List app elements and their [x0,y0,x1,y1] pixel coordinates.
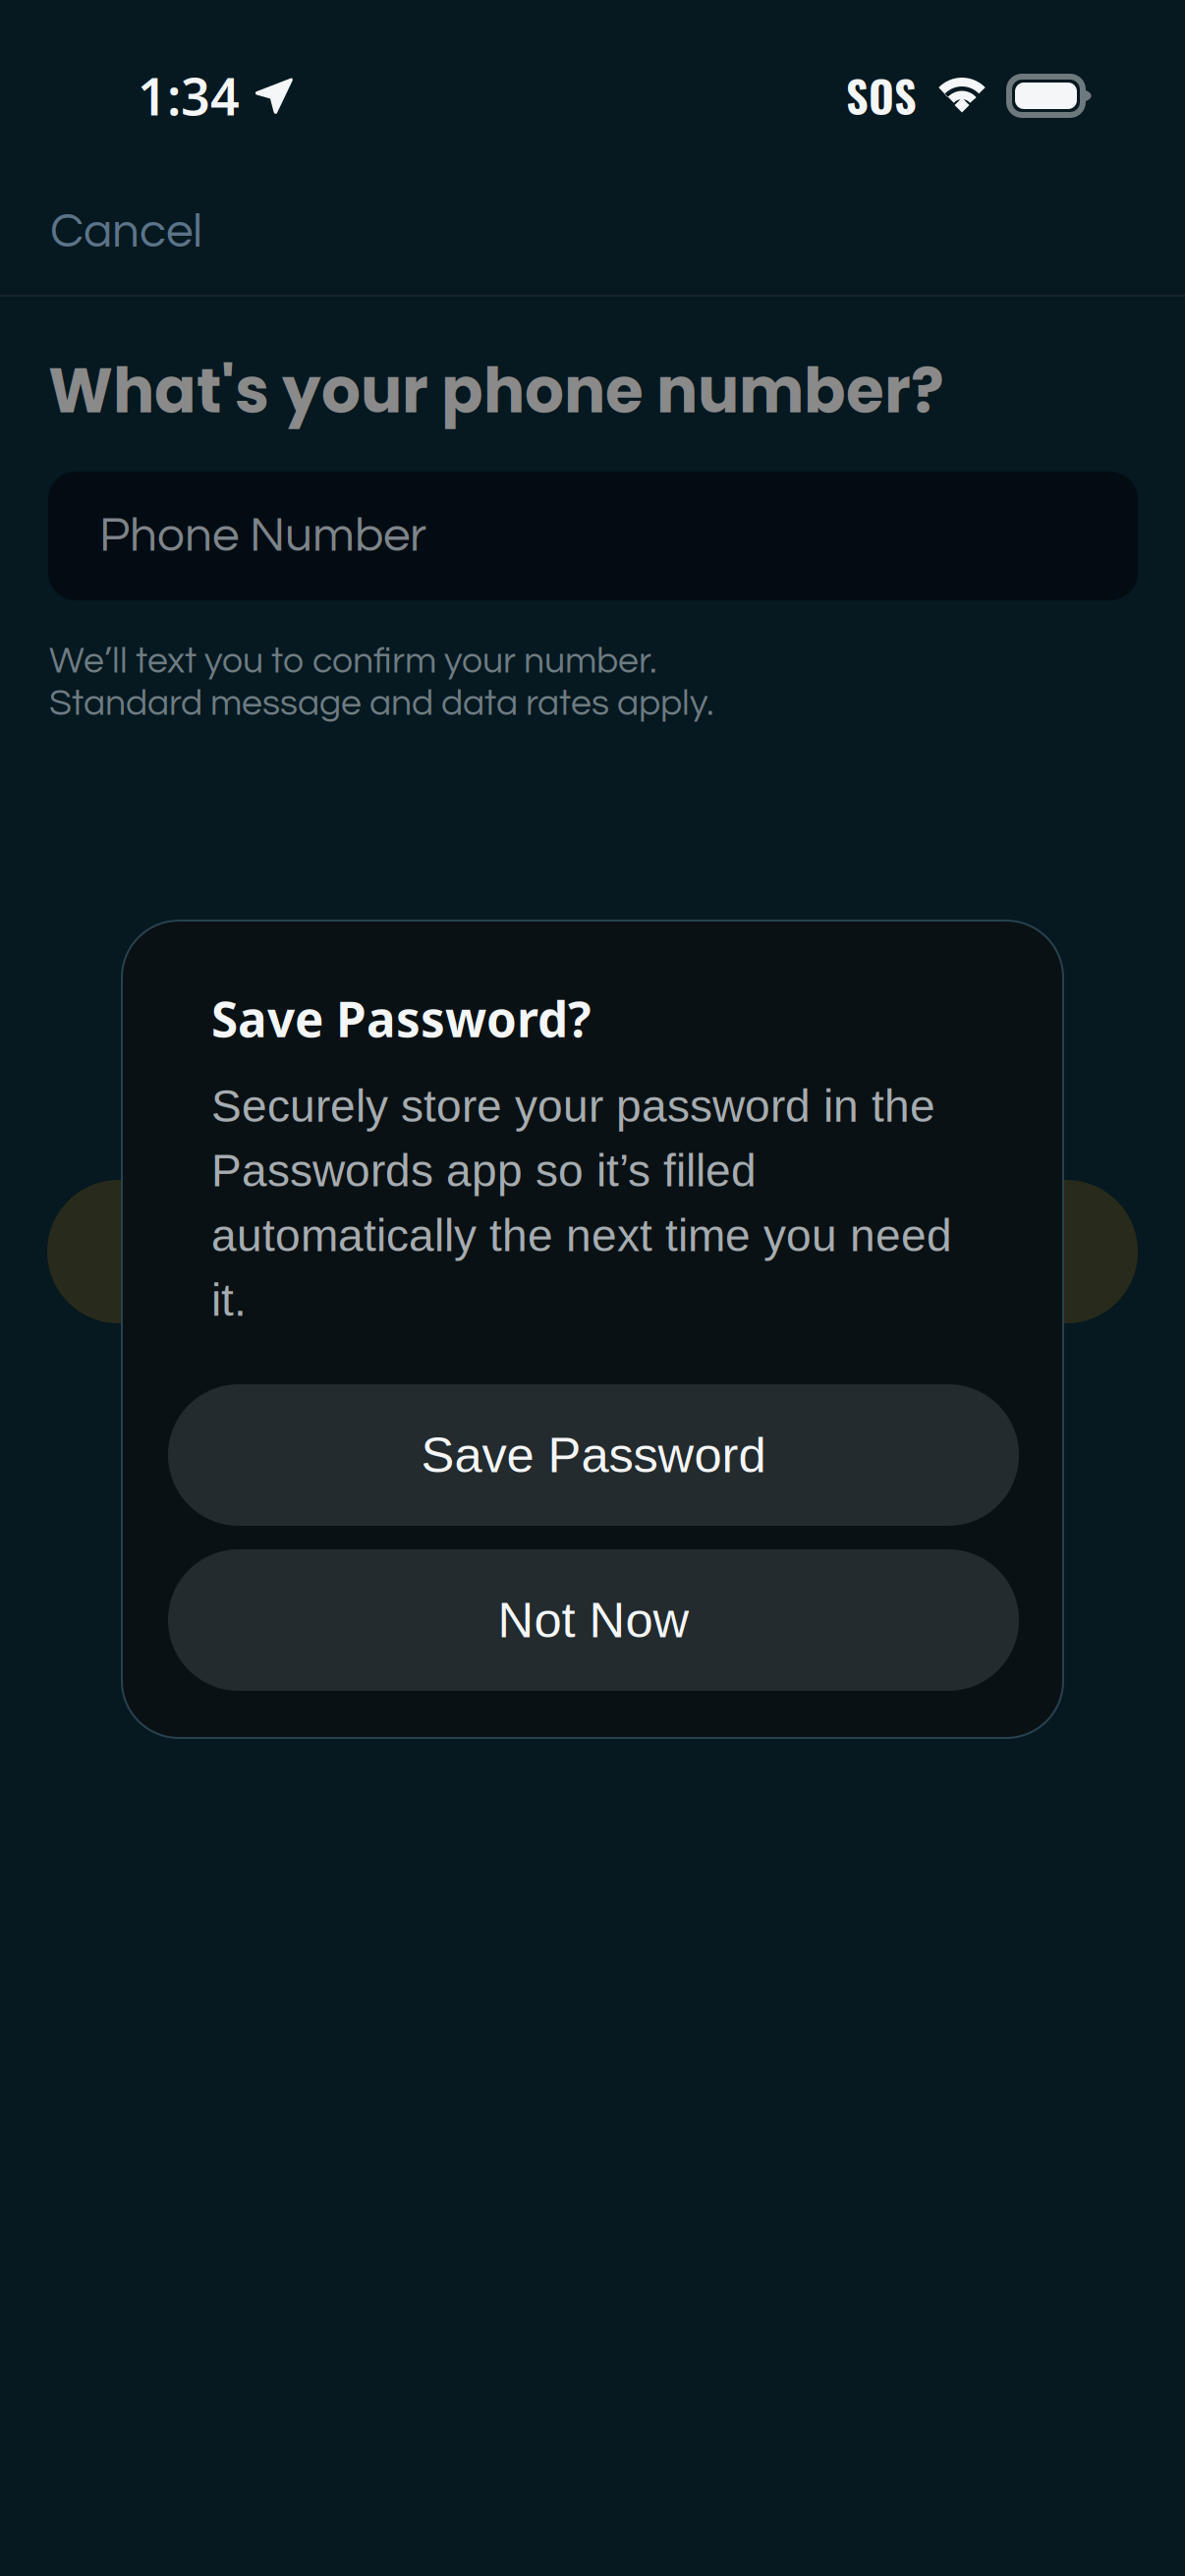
staticText: Not Now [498,1592,689,1648]
staticText: Save Password? [211,985,592,1051]
staticText: SOS [846,63,917,127]
staticText: Cancel [50,207,202,257]
button[interactable]: Cancel [0,169,306,295]
staticText: Save Password [421,1427,766,1483]
button[interactable]: Not Now [168,1549,1019,1691]
staticText: Standard message and data rates apply. [49,685,714,723]
staticText: Securely store your password in the Pass… [211,1081,952,1325]
staticText: We’ll text you to confirm your number. [49,643,657,680]
staticText: What's your phone number? [48,348,944,434]
staticText: 1:34 [138,61,240,130]
staticText: Phone Number [99,511,426,561]
button[interactable]: Save Password [168,1384,1019,1526]
